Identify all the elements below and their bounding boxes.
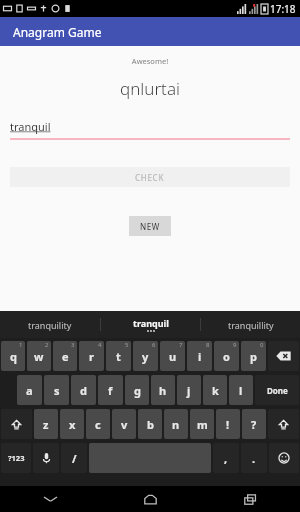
staticText: Awesome! [0, 56, 300, 66]
button[interactable]: Shift [1, 409, 32, 439]
button[interactable]: CHECK [10, 167, 290, 187]
staticText: Done [267, 385, 288, 396]
button[interactable]: y [133, 341, 158, 371]
staticText: 2 [45, 341, 49, 349]
button[interactable]: Backspace [268, 341, 299, 371]
button[interactable]: j [177, 375, 201, 405]
staticText: ! [226, 417, 230, 432]
button[interactable]: a [17, 375, 42, 405]
staticText: g [134, 383, 141, 398]
staticText: e [62, 349, 69, 364]
staticText: i [198, 349, 202, 364]
button[interactable]: t [106, 341, 131, 371]
button[interactable]: tranquility [0, 311, 100, 338]
staticText: w [34, 349, 44, 364]
staticText: 8 [206, 341, 210, 349]
staticText: b [147, 417, 154, 432]
button[interactable]: x [60, 409, 84, 439]
button[interactable]: Anagram Game [0, 17, 300, 46]
staticText: tranquility [28, 319, 72, 331]
staticText: x [69, 417, 76, 432]
staticText: 0 [260, 341, 264, 349]
staticText: q [10, 349, 17, 364]
button[interactable]: Emoji [269, 443, 299, 473]
button[interactable]: d [71, 375, 96, 405]
button[interactable]: Voice input [33, 443, 59, 473]
button[interactable]: f [98, 375, 123, 405]
button[interactable]: k [203, 375, 227, 405]
staticText: tranquil [133, 317, 169, 329]
staticText: CHECK [135, 172, 165, 183]
button[interactable]: Recent apps [200, 486, 300, 512]
staticText: v [121, 417, 128, 432]
staticText: ?123 [8, 453, 25, 463]
button[interactable]: q [1, 341, 25, 371]
staticText: 5 [125, 341, 129, 349]
staticText: d [80, 383, 87, 398]
button[interactable]: Back [0, 486, 100, 512]
button[interactable]: n [164, 409, 188, 439]
button[interactable]: l [229, 375, 253, 405]
staticText: 9 [233, 341, 237, 349]
staticText: tranquillity [228, 319, 274, 331]
button[interactable]: g [125, 375, 149, 405]
staticText: o [223, 349, 230, 364]
staticText: y [142, 349, 149, 364]
staticText: m [197, 417, 208, 432]
button[interactable]: ?123 [1, 443, 31, 473]
staticText: 1 [19, 341, 23, 349]
button[interactable]: ? [242, 409, 266, 439]
button[interactable]: NEW [129, 216, 171, 236]
button[interactable]: . [241, 443, 267, 473]
button[interactable]: r [79, 341, 104, 371]
staticText: a [26, 383, 33, 398]
button[interactable]: Done [255, 375, 299, 405]
staticText: c [95, 417, 101, 432]
button[interactable]: tranquillity [201, 311, 300, 338]
button[interactable]: o [214, 341, 239, 371]
button[interactable]: z [34, 409, 58, 439]
staticText: f [108, 383, 113, 398]
staticText: r [89, 349, 94, 364]
staticText: h [159, 383, 167, 398]
button[interactable]: , [213, 443, 239, 473]
button[interactable]: w [27, 341, 51, 371]
staticText: p [250, 349, 257, 364]
button[interactable]: e [53, 341, 77, 371]
button[interactable]: tranquil [10, 119, 290, 140]
staticText: z [43, 417, 49, 432]
button[interactable]: ! [216, 409, 240, 439]
button[interactable]: b [138, 409, 162, 439]
staticText: . [252, 451, 256, 466]
staticText: 6 [152, 341, 156, 349]
button[interactable]: i [187, 341, 212, 371]
button[interactable]: m [190, 409, 214, 439]
staticText: n [172, 417, 180, 432]
button[interactable]: p [241, 341, 266, 371]
staticText: 7 [179, 341, 183, 349]
staticText: k [212, 383, 219, 398]
staticText: u [169, 349, 177, 364]
staticText: Anagram Game [13, 24, 102, 40]
staticText: / [72, 451, 77, 466]
button[interactable]: u [160, 341, 185, 371]
button[interactable]: v [112, 409, 136, 439]
staticText: 4 [98, 341, 102, 349]
button[interactable]: h [151, 375, 175, 405]
staticText: t [116, 349, 121, 364]
button[interactable]: Home [100, 486, 200, 512]
staticText: 17:18 [270, 2, 296, 16]
button[interactable]: c [86, 409, 110, 439]
button[interactable]: tranquil [101, 311, 200, 338]
staticText: s [54, 383, 60, 398]
staticText: qnlurtai [0, 77, 300, 100]
staticText: , [224, 451, 228, 466]
button[interactable]: Shift [268, 409, 299, 439]
button[interactable]: / [61, 443, 87, 473]
staticText: l [239, 383, 243, 398]
button[interactable]: s [44, 375, 69, 405]
staticText: j [187, 383, 191, 398]
staticText: NEW [140, 221, 160, 232]
staticText: ? [251, 417, 257, 432]
